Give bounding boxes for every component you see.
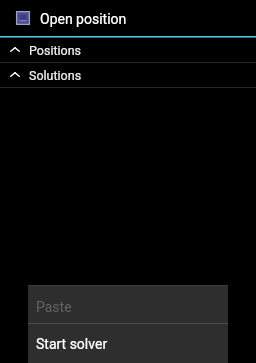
staticText: Start solver <box>36 336 108 352</box>
staticText: Solutions <box>29 68 82 83</box>
button[interactable]: Open position <box>0 0 256 36</box>
staticText: Paste <box>36 299 72 315</box>
staticText: Open position <box>40 11 127 27</box>
button[interactable]: Positions <box>0 38 256 62</box>
staticText: Positions <box>29 43 82 58</box>
button[interactable]: Paste <box>28 287 228 323</box>
button[interactable]: Start solver <box>28 324 228 363</box>
button[interactable]: Solutions <box>0 63 256 87</box>
